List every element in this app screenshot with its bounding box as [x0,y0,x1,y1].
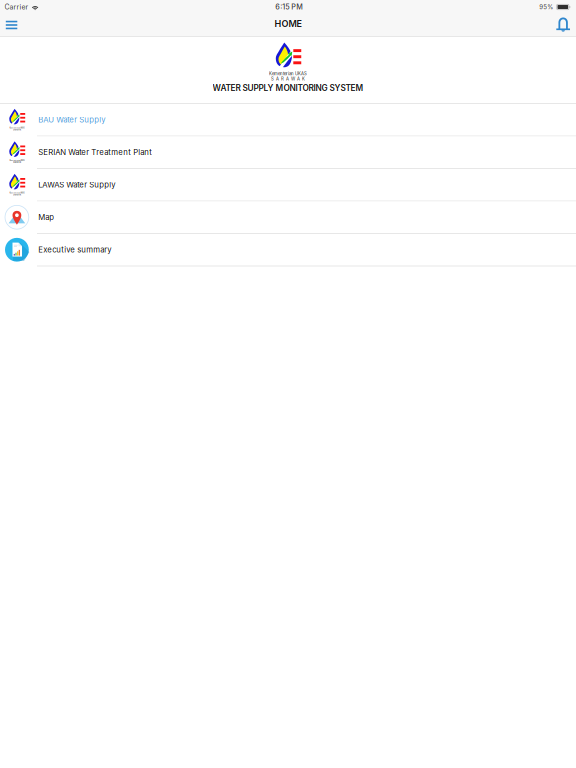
staticText: S A R A W A K [13,129,21,131]
staticText: 6:15 PM [275,3,303,11]
button[interactable]: Kementerian UKAS [0,136,576,169]
staticText: LAWAS Water Supply [38,180,115,189]
staticText: Kementerian UKAS [9,159,24,161]
button[interactable]: Menu [0,16,25,34]
button[interactable]: Map [0,201,576,234]
staticText: S A R A W A K [13,161,21,163]
staticText: Executive summary [38,245,111,254]
staticText: Kementerian UKAS [9,127,24,129]
button[interactable]: Kementerian UKAS [0,104,576,136]
staticText: Kementerian UKAS [9,192,24,194]
staticText: Carrier [4,3,28,11]
button[interactable]: Notifications [547,15,576,35]
staticText: WATER SUPPLY MONITORING SYSTEM [212,83,363,93]
staticText: S A R A W A K [271,76,305,81]
staticText: Map [38,213,54,222]
staticText: SERIAN Water Treatment Plant [38,148,152,157]
staticText: 95% [539,3,553,11]
staticText: Kementerian UKAS [269,71,307,76]
button[interactable]: Executive summary [0,234,576,266]
button[interactable]: Kementerian UKAS [0,169,576,201]
staticText: HOME [274,18,301,29]
staticText: S A R A W A K [13,194,21,196]
staticText: BAU Water Supply [38,115,105,124]
